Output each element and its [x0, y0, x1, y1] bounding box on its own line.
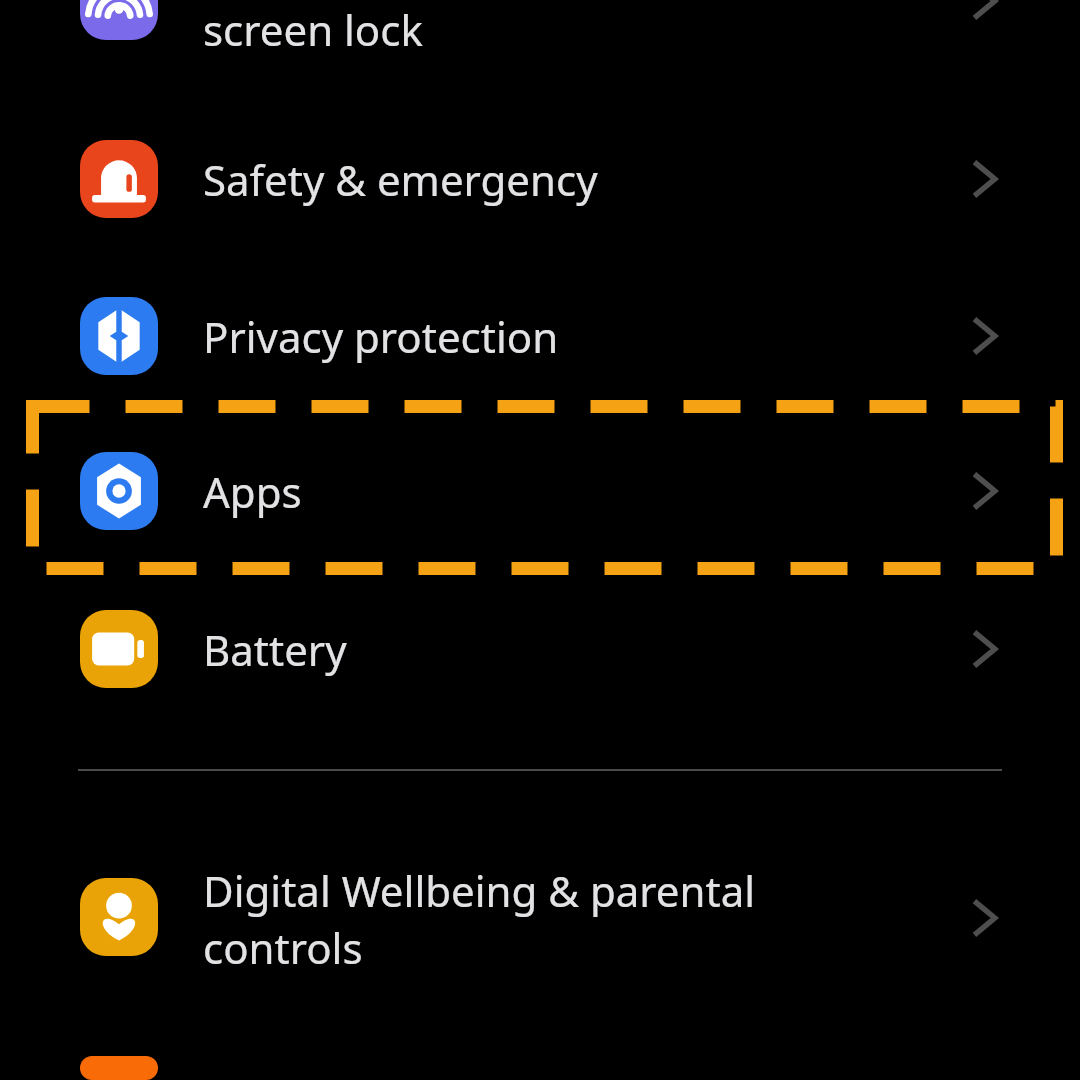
- staticText: Battery: [203, 621, 347, 678]
- button[interactable]: Digital Wellbeing & parental controls: [0, 827, 1080, 1007]
- other: Open: [962, 0, 1014, 27]
- button[interactable]: Biometrics and screen lock: [0, 0, 1080, 82]
- button[interactable]: [0, 1056, 1080, 1080]
- button[interactable]: Privacy protection: [0, 257, 1080, 415]
- other: Open: [962, 465, 1014, 517]
- button[interactable]: Apps: [0, 412, 1080, 570]
- other: Open: [962, 623, 1014, 675]
- other: Open: [962, 892, 1014, 944]
- staticText: Apps: [203, 463, 302, 520]
- staticText: Digital Wellbeing & parental controls: [203, 862, 756, 976]
- other: Open: [962, 153, 1014, 205]
- button[interactable]: Battery: [0, 570, 1080, 728]
- staticText: Safety & emergency: [203, 151, 598, 208]
- staticText: Biometrics and screen lock: [203, 0, 500, 58]
- button[interactable]: Safety & emergency: [0, 100, 1080, 258]
- staticText: Privacy protection: [203, 308, 559, 365]
- other: Open: [962, 310, 1014, 362]
